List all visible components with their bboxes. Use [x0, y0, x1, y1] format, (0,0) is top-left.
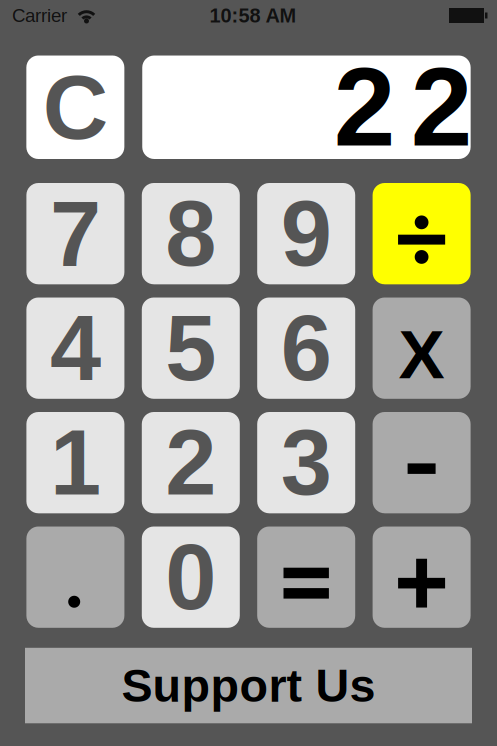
button[interactable]: X: [373, 297, 471, 399]
button[interactable]: 4: [26, 297, 124, 399]
staticText: X: [399, 315, 445, 393]
button[interactable]: 8: [142, 183, 240, 284]
button[interactable]: 0: [142, 526, 240, 628]
button[interactable]: 1: [26, 412, 124, 513]
button[interactable]: Equals: [257, 526, 355, 628]
staticText: Support Us: [121, 659, 375, 712]
staticText: 7: [50, 182, 101, 285]
button[interactable]: Support Us: [25, 648, 472, 723]
staticText: 2: [165, 411, 216, 514]
staticText: 1: [50, 411, 101, 514]
staticText: 5: [165, 297, 216, 400]
staticText: 22: [334, 45, 473, 169]
staticText: 10:58 AM: [209, 4, 296, 27]
staticText: C: [43, 57, 108, 158]
button[interactable]: 7: [26, 183, 124, 284]
button[interactable]: C: [26, 55, 124, 159]
button[interactable]: 6: [257, 297, 355, 399]
button[interactable]: Plus: [373, 526, 471, 628]
button[interactable]: 5: [142, 297, 240, 399]
button[interactable]: Divide: [373, 183, 471, 284]
button[interactable]: 9: [257, 183, 355, 284]
button[interactable]: Minus: [373, 412, 471, 513]
button[interactable]: 2: [142, 412, 240, 513]
staticText: 6: [281, 297, 332, 400]
staticText: 0: [165, 526, 216, 629]
button[interactable]: 3: [257, 412, 355, 513]
staticText: 9: [281, 182, 332, 285]
staticText: 8: [165, 182, 216, 285]
staticText: Carrier: [12, 5, 67, 26]
staticText: 3: [281, 411, 332, 514]
staticText: 4: [50, 297, 101, 400]
button[interactable]: Decimal point: [26, 526, 124, 628]
